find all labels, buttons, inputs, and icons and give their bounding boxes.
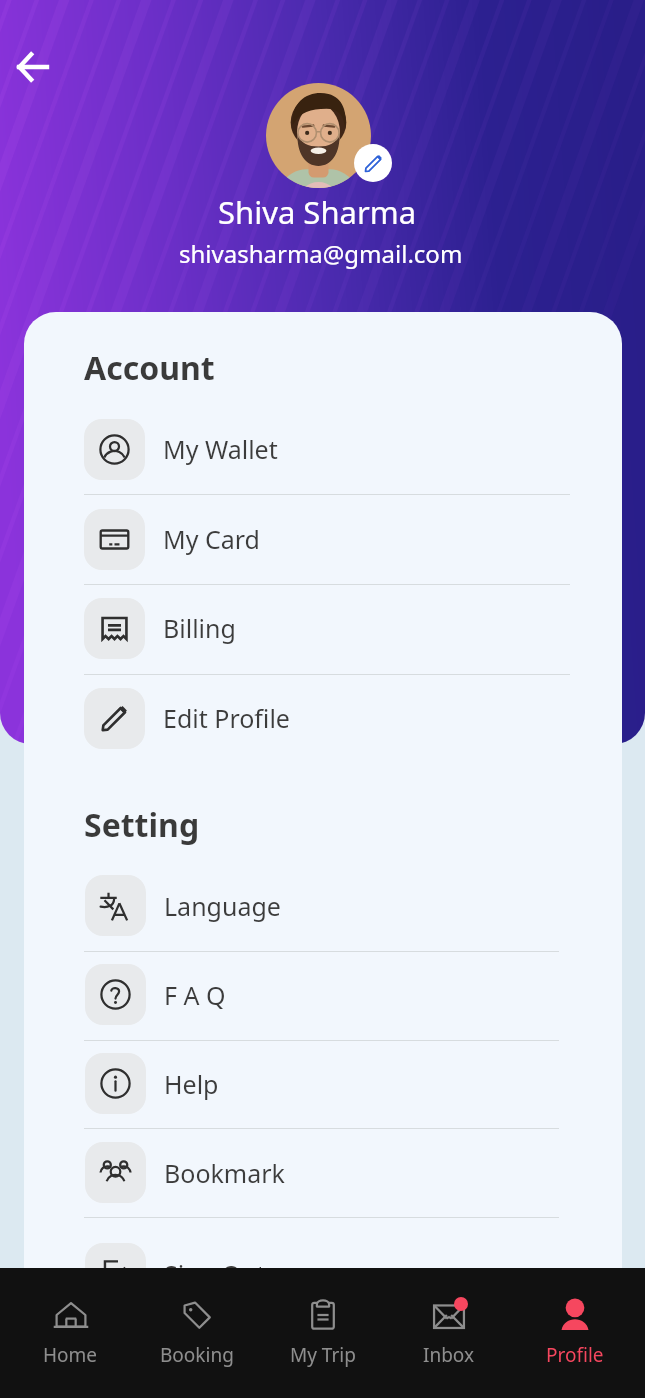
button[interactable]: F A Q — [24, 950, 622, 1039]
staticText: Help — [164, 1067, 219, 1101]
button[interactable]: Home — [7, 1268, 134, 1398]
staticText: Setting — [84, 803, 200, 847]
button[interactable]: My Trip — [260, 1268, 386, 1398]
staticText: Billing — [163, 611, 236, 645]
button[interactable]: My Wallet — [24, 404, 622, 494]
button[interactable]: My Card — [24, 494, 622, 584]
staticText: shivasharma@gmail.com — [179, 237, 463, 270]
staticText: Edit Profile — [163, 701, 290, 735]
staticText: My Wallet — [163, 432, 278, 466]
staticText: Account — [84, 346, 215, 390]
button[interactable]: Edit profile photo — [354, 144, 392, 182]
staticText: Shiva Sharma — [218, 191, 417, 233]
button[interactable]: Sign Out — [24, 1229, 622, 1318]
staticText: My Card — [163, 522, 260, 556]
staticText: Home — [43, 1342, 98, 1368]
button[interactable]: Inbox — [386, 1268, 512, 1398]
button[interactable]: Language — [24, 861, 622, 950]
staticText: F A Q — [164, 978, 226, 1012]
button[interactable]: Back — [9, 43, 57, 91]
staticText: Booking — [160, 1342, 234, 1368]
staticText: Profile — [546, 1342, 604, 1368]
button[interactable]: Booking — [134, 1268, 260, 1398]
staticText: Bookmark — [164, 1156, 285, 1190]
staticText: Language — [164, 889, 281, 923]
staticText: My Trip — [290, 1342, 356, 1368]
button[interactable]: Profile — [512, 1268, 638, 1398]
button[interactable]: Billing — [24, 583, 622, 673]
staticText: Sign Out — [164, 1257, 266, 1291]
button[interactable]: Bookmark — [24, 1128, 622, 1217]
staticText: Inbox — [423, 1342, 475, 1368]
button[interactable]: Help — [24, 1039, 622, 1128]
button[interactable]: Edit Profile — [24, 673, 622, 763]
